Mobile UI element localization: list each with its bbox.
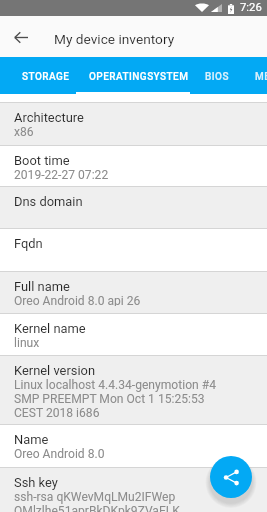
staticText: QMlzlhe51aprBkDKpk9ZVaELK: [14, 504, 180, 512]
staticText: Linux localhost 4.4.34-genymotion #4: [14, 378, 216, 392]
staticText: Boot time: [14, 153, 70, 168]
staticText: Oreo Android 8.0 api 26: [14, 294, 141, 306]
staticText: Full name: [14, 279, 70, 294]
staticText: 7:26: [240, 1, 262, 14]
button[interactable]: ME: [243, 62, 267, 92]
staticText: Dns domain: [14, 194, 83, 209]
staticText: Ssh key: [14, 475, 58, 490]
button[interactable]: Fqdn: [0, 229, 267, 271]
button[interactable]: OPERATINGSYSTEM: [78, 62, 199, 92]
button[interactable]: Boot time: [0, 146, 267, 186]
staticText: ME: [255, 71, 267, 83]
button[interactable]: BIOS: [195, 62, 239, 92]
staticText: Oreo Android 8.0: [14, 447, 105, 460]
staticText: 2019-22-27 07:22: [14, 168, 109, 179]
staticText: Kernel name: [14, 321, 86, 336]
staticText: STORAGE: [22, 71, 70, 83]
staticText: Name: [14, 432, 49, 447]
staticText: My device inventory: [54, 31, 175, 47]
staticText: OPERATINGSYSTEM: [89, 71, 189, 83]
staticText: CEST 2018 i686: [14, 406, 100, 417]
button[interactable]: Full name: [0, 272, 267, 313]
staticText: Fqdn: [14, 236, 43, 251]
staticText: ssh-rsa qKWevMqLMu2IFWep: [14, 490, 176, 504]
button[interactable]: Name: [0, 425, 267, 467]
button[interactable]: STORAGE: [13, 62, 79, 92]
staticText: BIOS: [205, 71, 229, 83]
button[interactable]: Back: [8, 24, 34, 50]
button[interactable]: Ssh key: [0, 468, 267, 512]
staticText: SMP PREEMPT Mon Oct 1 15:25:53: [14, 392, 205, 406]
staticText: Kernel version: [14, 363, 96, 378]
button[interactable]: Kernel name: [0, 314, 267, 355]
button[interactable]: Kernel version: [0, 356, 267, 424]
staticText: Architecture: [14, 110, 84, 125]
staticText: linux: [14, 336, 40, 348]
button[interactable]: Share: [210, 456, 252, 498]
button[interactable]: Architecture: [0, 103, 267, 145]
button[interactable]: Dns domain: [0, 187, 267, 228]
staticText: x86: [14, 125, 34, 138]
